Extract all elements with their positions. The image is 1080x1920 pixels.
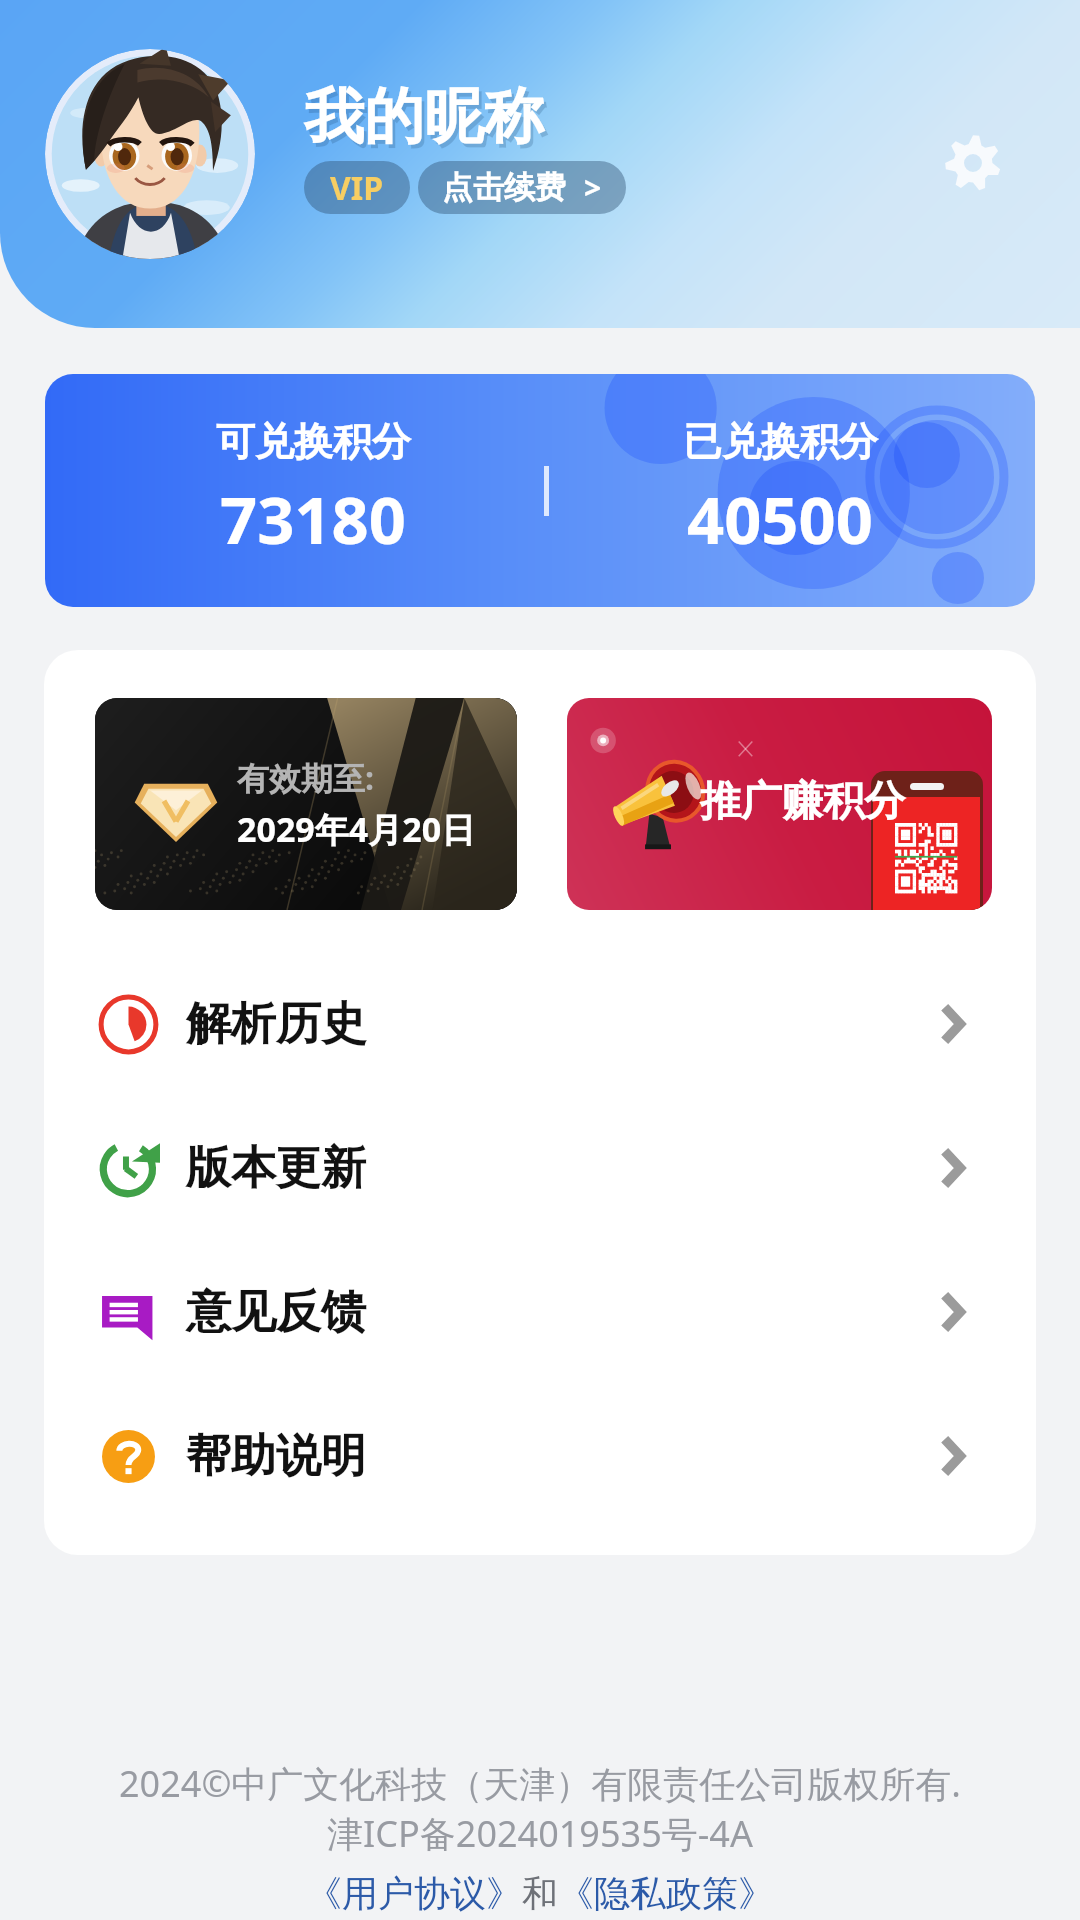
staticText: 2029年4月20日	[237, 806, 476, 852]
staticText: 版本更新	[186, 1140, 366, 1197]
staticText: 73180	[220, 475, 406, 564]
button[interactable]	[45, 49, 255, 259]
button[interactable]: 推广赚积分	[567, 698, 992, 910]
staticText: 和	[522, 1871, 558, 1916]
button[interactable]: 帮助说明	[44, 1384, 1036, 1528]
staticText: 帮助说明	[186, 1428, 366, 1485]
button[interactable]: 版本更新	[44, 1096, 1036, 1240]
button[interactable]: 《用户协议》	[306, 1871, 522, 1916]
button[interactable]: 意见反馈	[44, 1240, 1036, 1384]
staticText: 我的昵称	[304, 79, 544, 155]
staticText: >	[584, 167, 602, 208]
button[interactable]: VIP	[304, 161, 410, 214]
staticText: 已兑换积分	[683, 417, 878, 466]
staticText: 解析历史	[186, 996, 366, 1053]
staticText: 2024©中广文化科技（天津）有限责任公司版权所有.	[119, 1759, 961, 1808]
button[interactable]: 解析历史	[44, 952, 1036, 1096]
button[interactable]: 有效期至:	[95, 698, 517, 910]
staticText: 意见反馈	[186, 1284, 366, 1341]
button[interactable]: 《隐私政策》	[558, 1871, 774, 1916]
staticText: 点击续费	[442, 168, 566, 207]
staticText: VIP	[330, 166, 384, 210]
button[interactable]: 点击续费	[418, 161, 626, 214]
staticText: 有效期至:	[237, 756, 374, 800]
staticText: 可兑换积分	[216, 417, 411, 466]
staticText: 津ICP备2024019535号-4A	[327, 1809, 753, 1858]
staticText: 40500	[687, 475, 873, 564]
button[interactable]: 可兑换积分	[45, 374, 1035, 607]
button[interactable]: Settings	[944, 134, 1002, 192]
staticText: 推广赚积分	[700, 776, 905, 828]
staticText: 我的昵称	[307, 83, 547, 159]
